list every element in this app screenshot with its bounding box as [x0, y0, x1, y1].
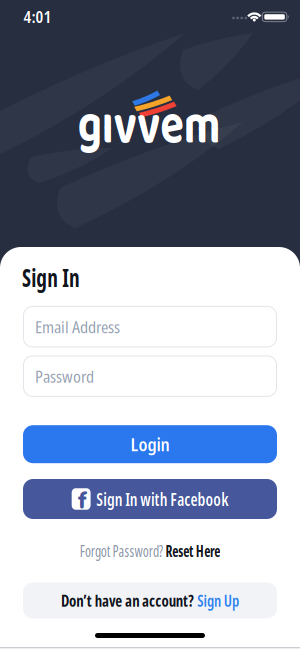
- staticText: Sign In: [22, 261, 91, 294]
- button[interactable]: Password: [23, 356, 276, 396]
- staticText: 4:01: [23, 5, 51, 28]
- staticText: Sign In with Facebook: [89, 487, 239, 511]
- button[interactable]: Login: [23, 425, 277, 463]
- staticText: Forgot Password?: [66, 540, 165, 562]
- button[interactable]: Don’t have an account?: [23, 582, 277, 618]
- staticText: Reset Here: [168, 540, 233, 562]
- staticText: gıvvem: [57, 82, 240, 171]
- staticText: Sign Up: [203, 589, 250, 612]
- button[interactable]: Email Address: [23, 306, 276, 347]
- staticText: Email Address: [35, 315, 120, 338]
- button[interactable]: f: [23, 479, 277, 519]
- staticText: Password: [35, 365, 94, 387]
- button[interactable]: Forgot Password?: [66, 540, 233, 562]
- staticText: Login: [130, 432, 169, 456]
- staticText: f: [68, 484, 78, 517]
- staticText: Don’t have an account?: [50, 589, 199, 612]
